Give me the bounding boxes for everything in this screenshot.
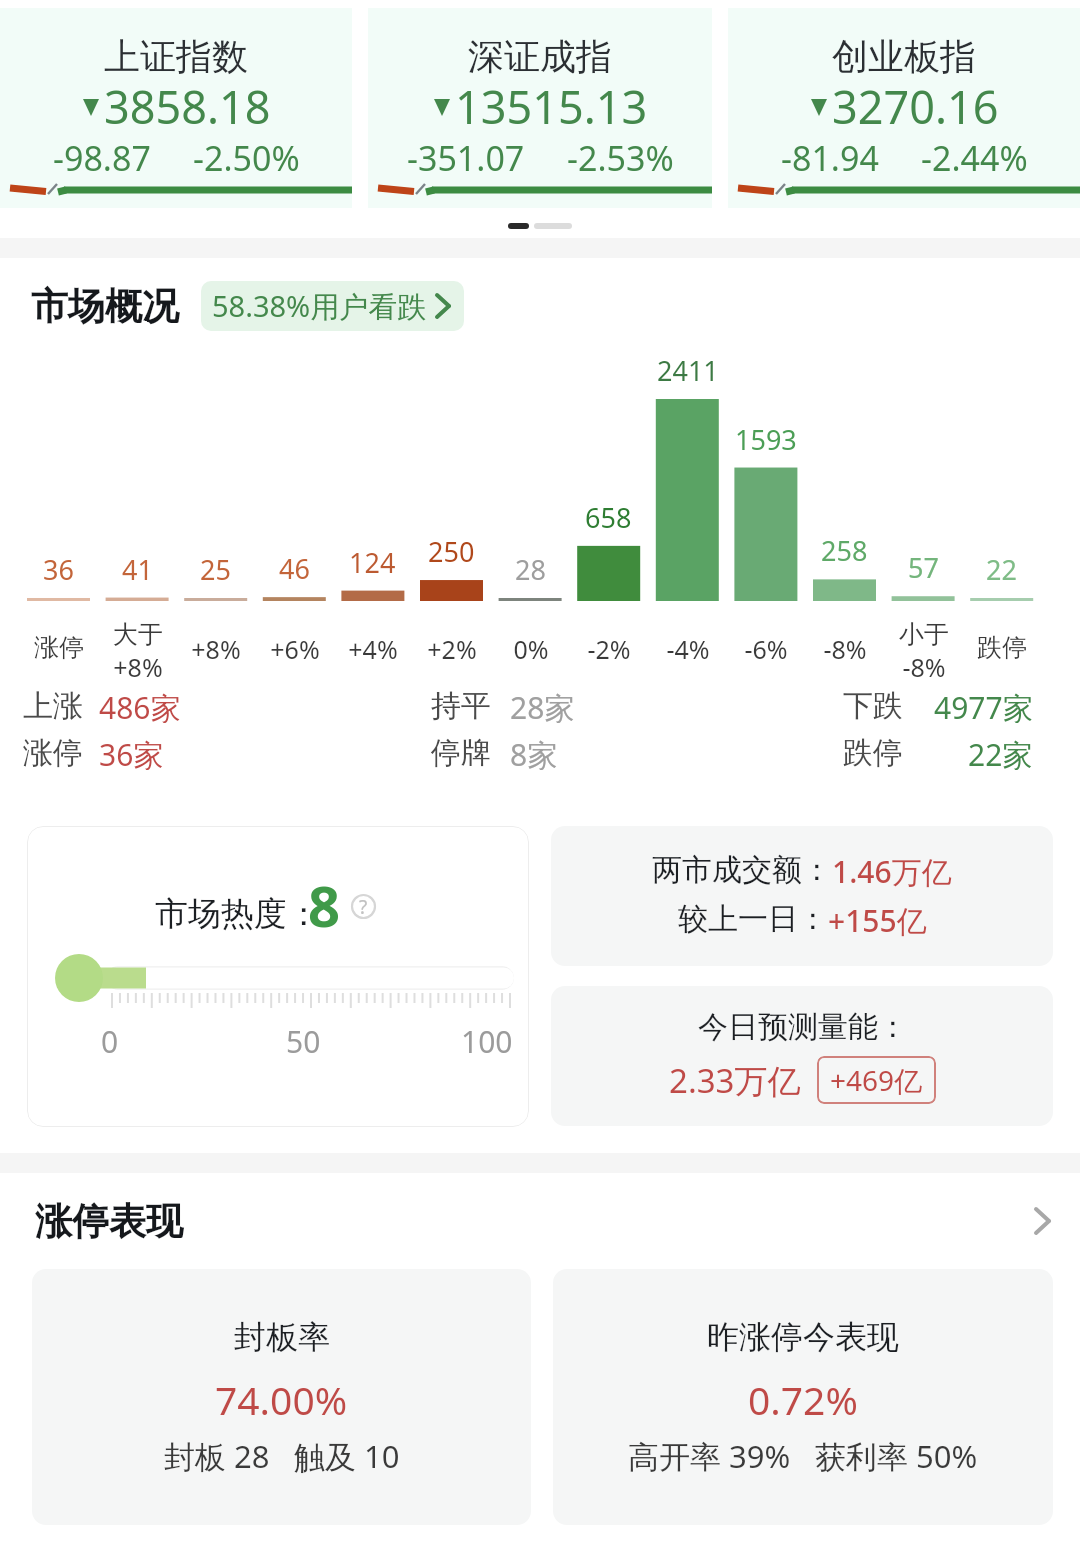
- staticText: -98.87: [53, 135, 151, 181]
- staticText: 触及 10: [294, 1435, 400, 1477]
- staticText: 58.38%用户看跌: [212, 286, 427, 326]
- staticText: 跌停: [843, 734, 903, 770]
- staticText: -2.53%: [567, 135, 674, 181]
- staticText: 3858.18: [104, 76, 271, 137]
- button[interactable]: 深证成指: [368, 8, 712, 208]
- other: 帮助说明: [351, 894, 376, 919]
- other: 查看更多: [1034, 1205, 1052, 1237]
- staticText: 上证指数: [104, 34, 248, 79]
- staticText: +8%: [113, 650, 163, 684]
- staticText: -6%: [744, 632, 788, 666]
- staticText: 486家: [99, 687, 181, 723]
- staticText: -8%: [902, 650, 946, 684]
- staticText: 74.00%: [215, 1373, 348, 1426]
- staticText: 2411: [657, 352, 719, 389]
- button[interactable]: 封板率: [32, 1269, 531, 1525]
- staticText: 持平: [431, 687, 491, 723]
- staticText: +4%: [348, 632, 398, 666]
- staticText: 250: [428, 533, 475, 570]
- staticText: 22家: [968, 734, 1033, 770]
- staticText: 市场热度：: [155, 893, 320, 935]
- staticText: 涨停: [23, 734, 83, 770]
- staticText: 封板率: [234, 1317, 330, 1357]
- staticText: 0: [101, 1021, 119, 1062]
- button[interactable]: 涨停表现: [0, 1173, 1080, 1269]
- staticText: 0%: [513, 632, 549, 666]
- staticText: -2.44%: [921, 135, 1028, 181]
- staticText: 两市成交额：: [652, 851, 832, 889]
- staticText: 跌停: [977, 632, 1027, 663]
- staticText: 4977家: [934, 687, 1033, 723]
- staticText: 上涨: [23, 687, 83, 723]
- staticText: 46: [279, 550, 310, 587]
- staticText: 36家: [99, 734, 164, 770]
- staticText: 市场概况: [31, 283, 179, 330]
- staticText: 2.33万亿: [669, 1058, 801, 1103]
- staticText: +2%: [427, 632, 477, 666]
- button[interactable]: 两市成交额：: [551, 826, 1053, 966]
- staticText: 28: [515, 551, 546, 588]
- staticText: 258: [821, 532, 868, 569]
- staticText: 今日预测量能：: [698, 1008, 908, 1046]
- staticText: 涨停: [34, 632, 84, 663]
- staticText: +6%: [270, 632, 320, 666]
- staticText: 小于: [899, 619, 949, 650]
- staticText: 8家: [510, 734, 558, 770]
- staticText: 50: [286, 1021, 321, 1062]
- staticText: 0.72%: [748, 1373, 858, 1426]
- staticText: 658: [585, 499, 632, 536]
- staticText: -2%: [587, 632, 631, 666]
- button[interactable]: 58.38%用户看跌: [212, 281, 451, 331]
- staticText: 创业板指: [832, 34, 976, 79]
- staticText: 1.46万亿: [832, 851, 952, 892]
- staticText: 下跌: [843, 687, 903, 723]
- staticText: 100: [461, 1021, 513, 1062]
- staticText: -351.07: [407, 135, 525, 181]
- staticText: 停牌: [431, 734, 491, 770]
- staticText: 昨涨停今表现: [707, 1317, 899, 1357]
- staticText: +155亿: [828, 900, 927, 941]
- staticText: -8%: [823, 632, 867, 666]
- button[interactable]: 今日预测量能：: [551, 986, 1053, 1126]
- staticText: -81.94: [781, 135, 879, 181]
- staticText: 获利率 50%: [815, 1435, 978, 1477]
- staticText: 22: [986, 551, 1017, 588]
- staticText: 高开率 39%: [628, 1435, 791, 1477]
- staticText: 41: [122, 551, 153, 588]
- staticText: 大于: [113, 619, 163, 650]
- button[interactable]: 创业板指: [728, 8, 1080, 208]
- staticText: +8%: [191, 632, 241, 666]
- staticText: 13515.13: [455, 76, 648, 137]
- button[interactable]: 上证指数: [0, 8, 352, 208]
- staticText: -2.50%: [193, 135, 300, 181]
- staticText: 57: [908, 549, 939, 586]
- staticText: 涨停表现: [35, 1198, 183, 1245]
- button[interactable]: 昨涨停今表现: [553, 1269, 1053, 1525]
- staticText: +469亿: [830, 1061, 923, 1099]
- staticText: 28家: [510, 687, 575, 723]
- staticText: 3270.16: [832, 76, 999, 137]
- staticText: 36: [43, 551, 74, 588]
- staticText: -4%: [666, 632, 710, 666]
- staticText: 8: [308, 867, 341, 943]
- staticText: 封板 28: [164, 1435, 270, 1477]
- staticText: 深证成指: [468, 34, 612, 79]
- staticText: 较上一日：: [678, 900, 828, 938]
- staticText: 124: [349, 544, 396, 581]
- staticText: ?: [359, 894, 368, 919]
- staticText: 1593: [735, 421, 797, 458]
- staticText: 25: [200, 551, 231, 588]
